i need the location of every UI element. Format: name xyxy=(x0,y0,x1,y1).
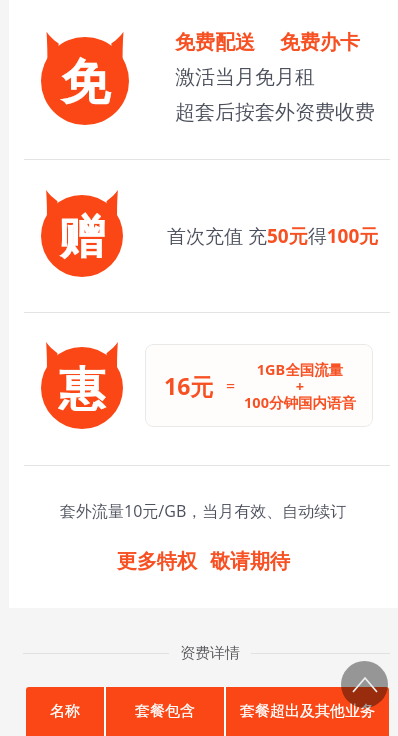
staticText: 名称 xyxy=(50,702,80,721)
staticText: 激活当月免月租 xyxy=(175,65,315,90)
staticText: 免 xyxy=(61,52,110,114)
staticText: 免费办卡 xyxy=(280,30,360,55)
staticText: 更多特权 xyxy=(117,549,197,574)
staticText: 超套后按套外资费收费 xyxy=(175,100,375,125)
staticText: 套餐超出及其他业务 xyxy=(240,702,375,721)
button[interactable]: 套餐超出及其他业务 xyxy=(226,687,389,736)
button[interactable]: 名称 xyxy=(26,687,104,736)
staticText: = xyxy=(226,375,236,397)
staticText: 惠 xyxy=(59,361,105,419)
button[interactable]: Scroll to top xyxy=(341,661,388,708)
staticText: 免费配送 xyxy=(175,30,255,55)
staticText: 资费详情 xyxy=(180,644,240,663)
staticText: 套外流量10元/GB，当月有效、自动续订 xyxy=(60,500,347,522)
staticText: 16元 xyxy=(164,370,214,401)
staticText: 赠 xyxy=(59,209,105,267)
button[interactable]: 套餐包含 xyxy=(106,687,224,736)
staticText: 敬请期待 xyxy=(210,549,290,574)
staticText: 1GB全国流量 + 100分钟国内语音 xyxy=(244,359,356,412)
staticText: 套餐包含 xyxy=(135,702,195,721)
staticText: 首次充值 充50元得100元 xyxy=(167,223,379,249)
